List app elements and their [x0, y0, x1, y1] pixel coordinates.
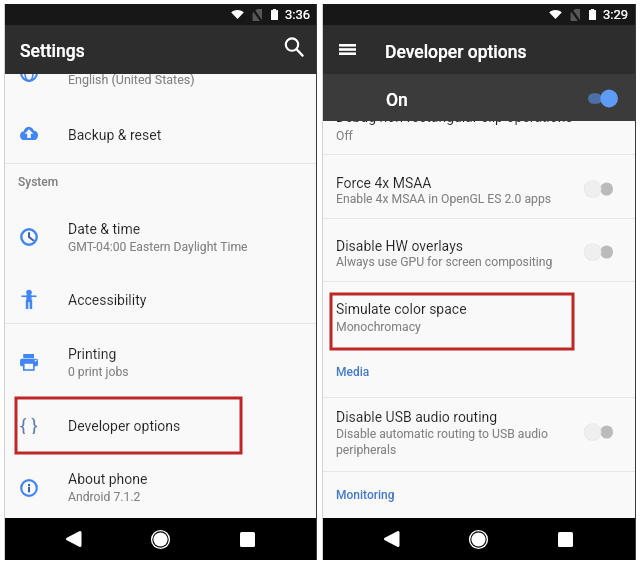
button[interactable]: [4, 104, 317, 160]
staticText: Simulate color space: [336, 301, 467, 317]
staticText: System: [18, 175, 59, 189]
staticText: Backup & reset: [68, 127, 162, 143]
button[interactable]: [4, 331, 317, 387]
staticText: Force 4x MSAA: [336, 175, 432, 191]
staticText: Debug non-rectangular clip operations: [336, 109, 573, 125]
button[interactable]: [322, 282, 635, 344]
button[interactable]: [322, 74, 636, 121]
staticText: Always use GPU for screen compositing: [336, 255, 553, 269]
staticText: Media: [336, 365, 370, 379]
button[interactable]: [4, 456, 317, 512]
staticText: Developer options: [68, 418, 181, 434]
button[interactable]: [4, 206, 317, 262]
staticText: Disable automatic routing to USB audio: [336, 427, 548, 441]
staticText: Accessibility: [68, 292, 147, 308]
button[interactable]: Search: [275, 28, 313, 66]
staticText: Settings: [20, 41, 85, 62]
button[interactable]: [4, 276, 317, 322]
staticText: Disable USB audio routing: [336, 409, 498, 425]
button[interactable]: Back: [56, 521, 92, 557]
button[interactable]: [322, 155, 635, 218]
staticText: Date & time: [68, 221, 141, 237]
button[interactable]: Home: [142, 521, 178, 557]
button[interactable]: Back: [374, 521, 410, 557]
button[interactable]: [322, 398, 635, 470]
button[interactable]: Navigation menu: [328, 30, 366, 68]
button[interactable]: Home: [460, 521, 496, 557]
button[interactable]: Recent apps: [547, 521, 583, 557]
staticText: Disable HW overlays: [336, 238, 463, 254]
staticText: Android 7.1.2: [68, 490, 141, 504]
button[interactable]: [4, 399, 317, 449]
staticText: peripherals: [336, 443, 397, 457]
staticText: Printing: [68, 346, 117, 362]
staticText: Off: [336, 129, 353, 143]
staticText: Enable 4x MSAA in OpenGL ES 2.0 apps: [336, 192, 552, 206]
staticText: English (United States): [68, 72, 195, 87]
staticText: Developer options: [385, 42, 527, 63]
staticText: Monochromacy: [336, 320, 421, 334]
staticText: On: [386, 90, 408, 111]
staticText: 3:29: [603, 7, 629, 22]
staticText: Monitoring: [336, 488, 395, 502]
button[interactable]: [322, 219, 635, 281]
staticText: { }: [20, 414, 38, 434]
staticText: 0 print jobs: [68, 365, 129, 379]
staticText: About phone: [68, 471, 148, 487]
staticText: 3:36: [285, 7, 311, 22]
button[interactable]: Recent apps: [229, 521, 265, 557]
staticText: GMT-04:00 Eastern Daylight Time: [68, 240, 248, 254]
